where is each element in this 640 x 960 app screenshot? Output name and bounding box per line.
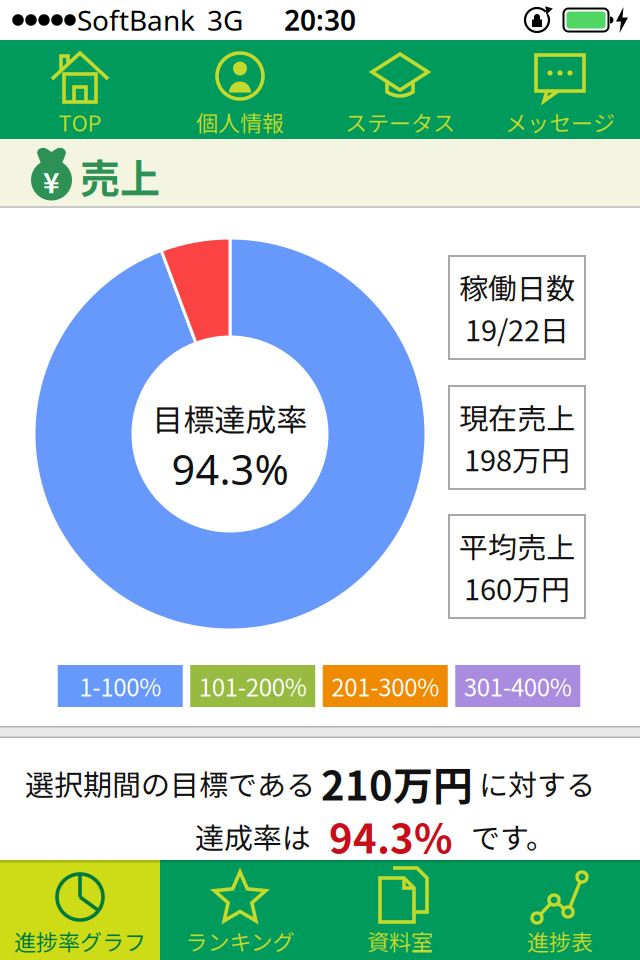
button[interactable]: 進捗率グラフ	[0, 860, 160, 960]
staticText: 94.3%	[311, 807, 471, 865]
staticText: 94.3%	[171, 442, 288, 496]
staticText: メッセージ	[505, 106, 615, 138]
staticText: 160万円	[464, 566, 570, 608]
staticText: ランキング	[185, 925, 294, 957]
staticText: に対する	[473, 762, 595, 804]
staticText: です。	[471, 815, 555, 857]
staticText: 210万円	[321, 754, 473, 812]
staticText: 売上	[80, 147, 160, 205]
staticText: 進捗表	[527, 925, 593, 957]
staticText: 198万円	[464, 437, 570, 479]
staticText: ステータス	[345, 106, 455, 138]
staticText: 個人情報	[196, 106, 284, 138]
staticText: 201-300%	[331, 669, 439, 703]
staticText: 301-400%	[464, 669, 572, 703]
staticText: 101-200%	[199, 669, 307, 703]
button[interactable]: メッセージ	[480, 40, 640, 139]
staticText: 目標達成率	[152, 396, 307, 440]
staticText: 稼働日数	[459, 265, 575, 307]
staticText: 平均売上	[459, 524, 575, 566]
staticText: 20:30	[284, 1, 356, 39]
staticText: 進捗率グラフ	[14, 925, 146, 957]
button[interactable]: 資料室	[320, 860, 480, 960]
button[interactable]: 進捗表	[480, 860, 640, 960]
button[interactable]: ステータス	[320, 40, 480, 139]
staticText: 19/22日	[465, 307, 569, 349]
staticText: 選択期間の目標である	[25, 762, 321, 804]
staticText: 資料室	[367, 925, 433, 957]
button[interactable]: 個人情報	[160, 40, 320, 139]
staticText: SoftBank	[77, 1, 195, 39]
staticText: 3G	[207, 1, 243, 39]
staticText: ¥	[43, 161, 60, 201]
button[interactable]: ランキング	[160, 860, 320, 960]
staticText: 達成率は	[195, 815, 311, 857]
staticText: TOP	[58, 106, 101, 138]
button[interactable]: TOP	[0, 40, 160, 139]
staticText: 1-100%	[79, 669, 161, 703]
staticText: 現在売上	[459, 395, 575, 437]
